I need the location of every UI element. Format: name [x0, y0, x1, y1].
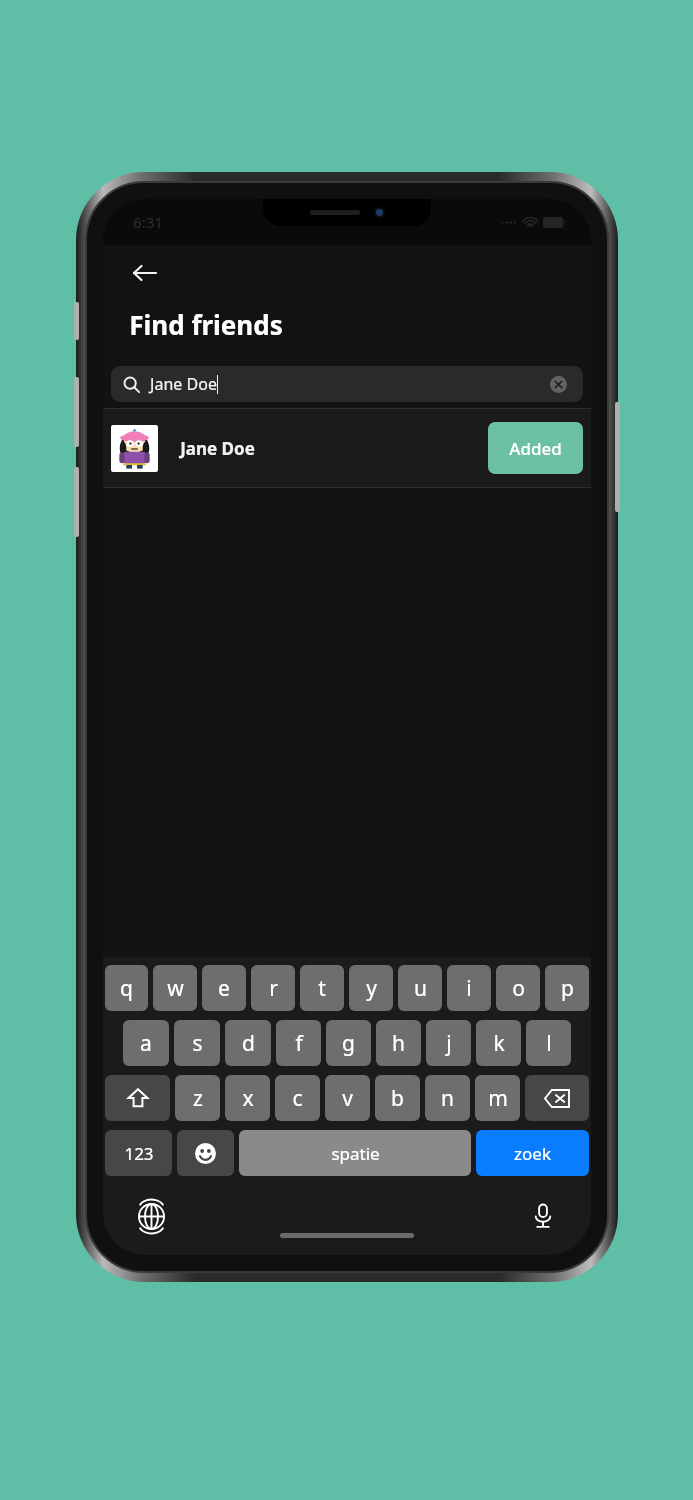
staticText: h	[392, 1029, 405, 1058]
button[interactable]: Back	[123, 251, 167, 295]
staticText: b	[391, 1084, 404, 1113]
staticText: i	[466, 974, 472, 1003]
staticText: y	[366, 974, 377, 1003]
button[interactable]: b	[375, 1075, 420, 1121]
button[interactable]: a	[123, 1020, 169, 1066]
button[interactable]: c	[275, 1075, 320, 1121]
button[interactable]: Jane Doe	[103, 409, 591, 487]
button[interactable]: v	[325, 1075, 370, 1121]
staticText: e	[218, 974, 230, 1003]
button[interactable]: Shift	[105, 1075, 170, 1121]
button[interactable]: n	[425, 1075, 470, 1121]
staticText: p	[561, 974, 574, 1003]
button[interactable]: p	[545, 965, 589, 1011]
button[interactable]: y	[349, 965, 393, 1011]
button[interactable]: m	[475, 1075, 520, 1121]
button[interactable]: s	[174, 1020, 220, 1066]
staticText: c	[292, 1084, 303, 1113]
staticText: n	[441, 1084, 454, 1113]
button[interactable]: Voice input	[521, 1194, 565, 1238]
button[interactable]: g	[326, 1020, 371, 1066]
button[interactable]: k	[476, 1020, 521, 1066]
staticText: z	[193, 1084, 203, 1113]
button[interactable]: t	[300, 965, 344, 1011]
staticText: 6:31	[133, 212, 163, 232]
staticText: m	[488, 1084, 508, 1113]
button[interactable]: Clear search	[545, 371, 571, 397]
button[interactable]: w	[153, 965, 197, 1011]
button[interactable]: Added	[488, 422, 583, 474]
staticText: j	[446, 1029, 452, 1058]
button[interactable]: l	[526, 1020, 571, 1066]
button[interactable]: spatie	[239, 1130, 471, 1176]
button[interactable]: u	[398, 965, 442, 1011]
staticText: t	[318, 974, 326, 1003]
staticText: l	[546, 1029, 552, 1058]
staticText: v	[342, 1084, 353, 1113]
staticText: s	[192, 1029, 203, 1058]
staticText: u	[414, 974, 427, 1003]
button[interactable]: Jane Doe	[111, 366, 583, 402]
button[interactable]: zoek	[476, 1130, 589, 1176]
button[interactable]: Emoji	[177, 1130, 234, 1176]
button[interactable]: r	[251, 965, 295, 1011]
button[interactable]: f	[276, 1020, 321, 1066]
button[interactable]: h	[376, 1020, 421, 1066]
staticText: r	[269, 974, 278, 1003]
button[interactable]: Change keyboard language	[129, 1194, 173, 1238]
staticText: w	[167, 974, 184, 1003]
button[interactable]: o	[496, 965, 540, 1011]
button[interactable]: 123	[105, 1130, 172, 1176]
staticText: Jane Doe	[180, 437, 255, 460]
staticText: k	[493, 1029, 505, 1058]
button[interactable]: Backspace	[525, 1075, 589, 1121]
staticText: f	[295, 1029, 303, 1058]
staticText: Find friends	[129, 307, 283, 342]
button[interactable]: i	[447, 965, 491, 1011]
staticText: Jane Doe	[150, 373, 217, 395]
staticText: g	[342, 1029, 355, 1058]
staticText: o	[512, 974, 525, 1003]
button[interactable]: q	[105, 965, 148, 1011]
button[interactable]: z	[175, 1075, 220, 1121]
staticText: 123	[124, 1142, 154, 1165]
button[interactable]: x	[225, 1075, 270, 1121]
staticText: spatie	[331, 1142, 380, 1165]
staticText: zoek	[514, 1142, 551, 1165]
button[interactable]: d	[225, 1020, 271, 1066]
staticText: x	[242, 1084, 254, 1113]
staticText: a	[140, 1029, 152, 1058]
staticText: d	[242, 1029, 255, 1058]
staticText: Added	[509, 437, 562, 460]
staticText: q	[120, 974, 133, 1003]
button[interactable]: e	[202, 965, 246, 1011]
button[interactable]: j	[426, 1020, 471, 1066]
